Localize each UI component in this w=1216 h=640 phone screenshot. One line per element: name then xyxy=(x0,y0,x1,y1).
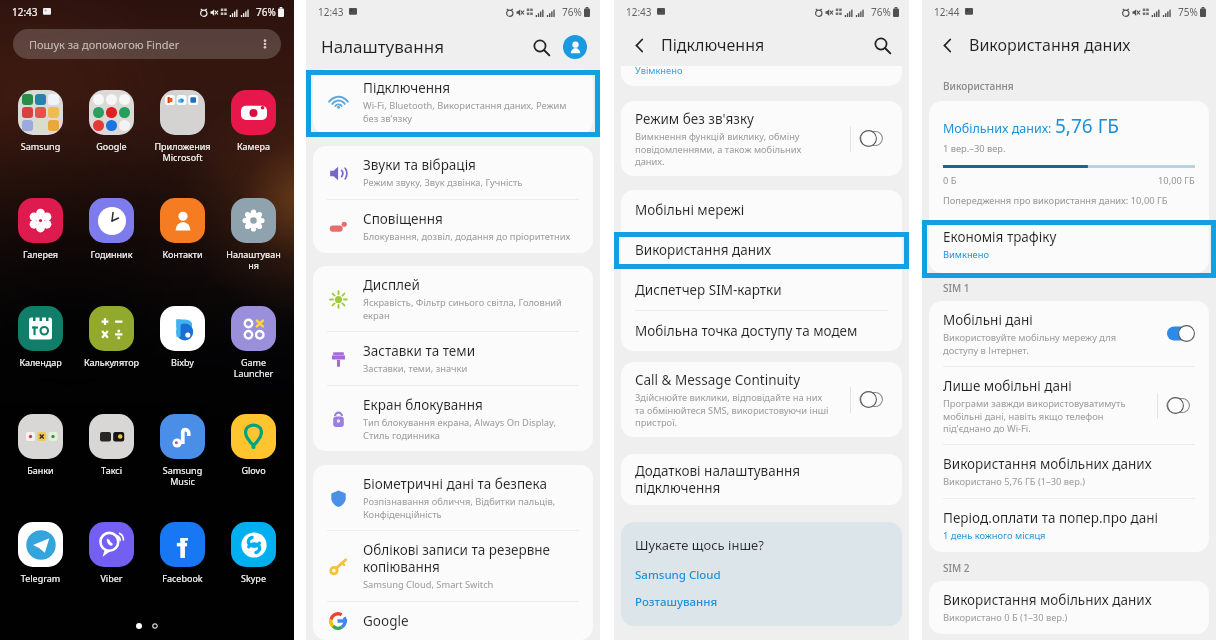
button[interactable]: Використання мобільних даних xyxy=(929,445,1209,499)
button[interactable]: Skype xyxy=(218,522,289,595)
staticText: Заставки та теми xyxy=(363,342,476,360)
staticText: Режим звуку, Звук дзвінка, Гучність xyxy=(363,176,523,189)
button[interactable]: Мобільні мережі xyxy=(621,190,902,230)
button[interactable]: Call & Message Continuity xyxy=(621,362,902,437)
staticText: Сповіщення xyxy=(363,210,443,228)
staticText: Калькулятор xyxy=(76,356,147,368)
button[interactable]: Період.оплати та попер.про дані xyxy=(929,499,1209,552)
button[interactable]: Toggle off xyxy=(860,391,888,408)
button[interactable]: Календар xyxy=(5,306,76,379)
button[interactable]: Диспетчер SIM-картки xyxy=(621,270,902,311)
button[interactable]: Економія трафіку xyxy=(929,216,1209,273)
button[interactable]: Пошук за допомогою Finder xyxy=(13,29,281,59)
button[interactable]: Звуки та вібрація xyxy=(313,146,593,200)
button[interactable]: Samsung Music xyxy=(147,414,218,487)
button[interactable]: Toggle on xyxy=(1167,325,1195,342)
staticText: 10,00 ГБ xyxy=(1158,174,1195,187)
staticText: Яскравість, Фільтр синього світла, Голов… xyxy=(363,296,562,321)
staticText: 12:43 xyxy=(318,5,344,19)
button[interactable]: Google xyxy=(76,90,147,163)
staticText: Використовуйте мобільну мережу для досту… xyxy=(943,331,1117,356)
button[interactable]: Google xyxy=(313,602,593,640)
staticText: Здійснюйте виклики, відповідайте на них … xyxy=(635,391,829,428)
staticText: Використано 5,76 ГБ (1–30 вер.) xyxy=(943,475,1086,488)
staticText: Мобільна точка доступу та модем xyxy=(635,322,858,340)
button[interactable]: Samsung xyxy=(5,90,76,163)
staticText: Використання мобільних даних xyxy=(943,455,1152,473)
staticText: Режим без зв'язку xyxy=(635,110,754,128)
button[interactable]: Search xyxy=(527,33,555,61)
button[interactable]: Режим без зв'язку xyxy=(621,101,902,176)
staticText: Використано 0 Б (1–30 вер.) xyxy=(943,611,1068,624)
staticText: Шукаєте щось інше? xyxy=(635,536,764,554)
staticText: Диспетчер SIM-картки xyxy=(635,281,782,299)
staticText: Game Launcher xyxy=(218,356,289,379)
button[interactable]: Лише мобільні дані xyxy=(929,367,1209,445)
staticText: Галерея xyxy=(5,248,76,260)
button[interactable]: Back xyxy=(627,33,651,57)
button[interactable]: Search xyxy=(868,31,896,59)
button[interactable]: Facebook xyxy=(147,522,218,595)
button[interactable]: Game Launcher xyxy=(218,306,289,379)
button[interactable]: Галерея xyxy=(5,198,76,271)
button[interactable]: Облікові записи та резервне копіювання xyxy=(313,531,593,602)
staticText: Вимкнення функцій виклику, обміну повідо… xyxy=(635,130,802,167)
button[interactable]: Контакти xyxy=(147,198,218,271)
button[interactable]: Мобільні дані xyxy=(929,301,1209,367)
staticText: Мобільних даних: xyxy=(943,120,1055,137)
staticText: Використання мобільних даних xyxy=(943,591,1152,609)
button[interactable]: Toggle off xyxy=(1167,397,1195,414)
button[interactable]: Сповіщення xyxy=(313,200,593,253)
other: More options xyxy=(259,38,271,50)
button[interactable]: Back xyxy=(935,33,959,57)
staticText: Facebook xyxy=(147,572,218,584)
staticText: Календар xyxy=(5,356,76,368)
staticText: Налаштуван ня xyxy=(218,248,289,271)
staticText: 12:44 xyxy=(934,5,960,19)
staticText: Додаткові налаштування підключення xyxy=(635,462,801,497)
staticText: 76% xyxy=(256,5,276,19)
staticText: Використання xyxy=(943,79,1014,93)
staticText: Заставки, теми, значки xyxy=(363,362,468,375)
staticText: SIM 1 xyxy=(943,281,970,295)
button[interactable]: Використання мобільних даних xyxy=(929,581,1209,634)
button[interactable]: Розташування xyxy=(635,594,718,610)
button[interactable]: Камера xyxy=(218,90,289,163)
button[interactable]: Toggle off xyxy=(860,130,888,147)
staticText: Розпізнавання обличчя, Відбитки пальців,… xyxy=(363,495,556,520)
button[interactable]: Таксі xyxy=(76,414,147,487)
staticText: 12:43 xyxy=(626,5,652,19)
button[interactable]: Дисплей xyxy=(313,266,593,332)
button[interactable]: Glovo xyxy=(218,414,289,487)
staticText: Використання даних xyxy=(635,241,772,259)
button[interactable]: Додаткові налаштування підключення xyxy=(621,454,902,505)
button[interactable]: Екран блокування xyxy=(313,386,593,451)
button[interactable]: Samsung Cloud xyxy=(635,567,721,583)
button[interactable]: Банки xyxy=(5,414,76,487)
button[interactable]: Біометричні дані та безпека xyxy=(313,465,593,531)
button[interactable]: Використання даних xyxy=(621,230,902,270)
button[interactable]: Bixby xyxy=(147,306,218,379)
staticText: 1 день кожного місяця xyxy=(943,529,1046,542)
staticText: Контакти xyxy=(147,248,218,260)
button[interactable]: Налаштуван ня xyxy=(218,198,289,271)
button[interactable]: Мобільна точка доступу та модем xyxy=(621,311,902,351)
staticText: Samsung Cloud, Smart Switch xyxy=(363,578,494,591)
staticText: 76% xyxy=(871,5,891,19)
staticText: SIM 2 xyxy=(943,561,970,575)
staticText: Період.оплати та попер.про дані xyxy=(943,509,1158,527)
staticText: Call & Message Continuity xyxy=(635,371,801,389)
button[interactable]: Telegram xyxy=(5,522,76,595)
staticText: Мобільні дані xyxy=(943,311,1033,329)
button[interactable]: Годинник xyxy=(76,198,147,271)
button[interactable]: Заставки та теми xyxy=(313,332,593,386)
button[interactable]: Калькулятор xyxy=(76,306,147,379)
button[interactable]: Підключення xyxy=(313,69,593,134)
staticText: Використання даних xyxy=(969,34,1131,56)
staticText: 12:43 xyxy=(12,5,38,19)
button[interactable]: Account xyxy=(563,35,587,59)
staticText: Економія трафіку xyxy=(943,228,1057,246)
button[interactable]: Приложения Microsoft xyxy=(147,90,218,163)
staticText: Пошук за допомогою Finder xyxy=(29,37,180,52)
button[interactable]: Viber xyxy=(76,522,147,595)
